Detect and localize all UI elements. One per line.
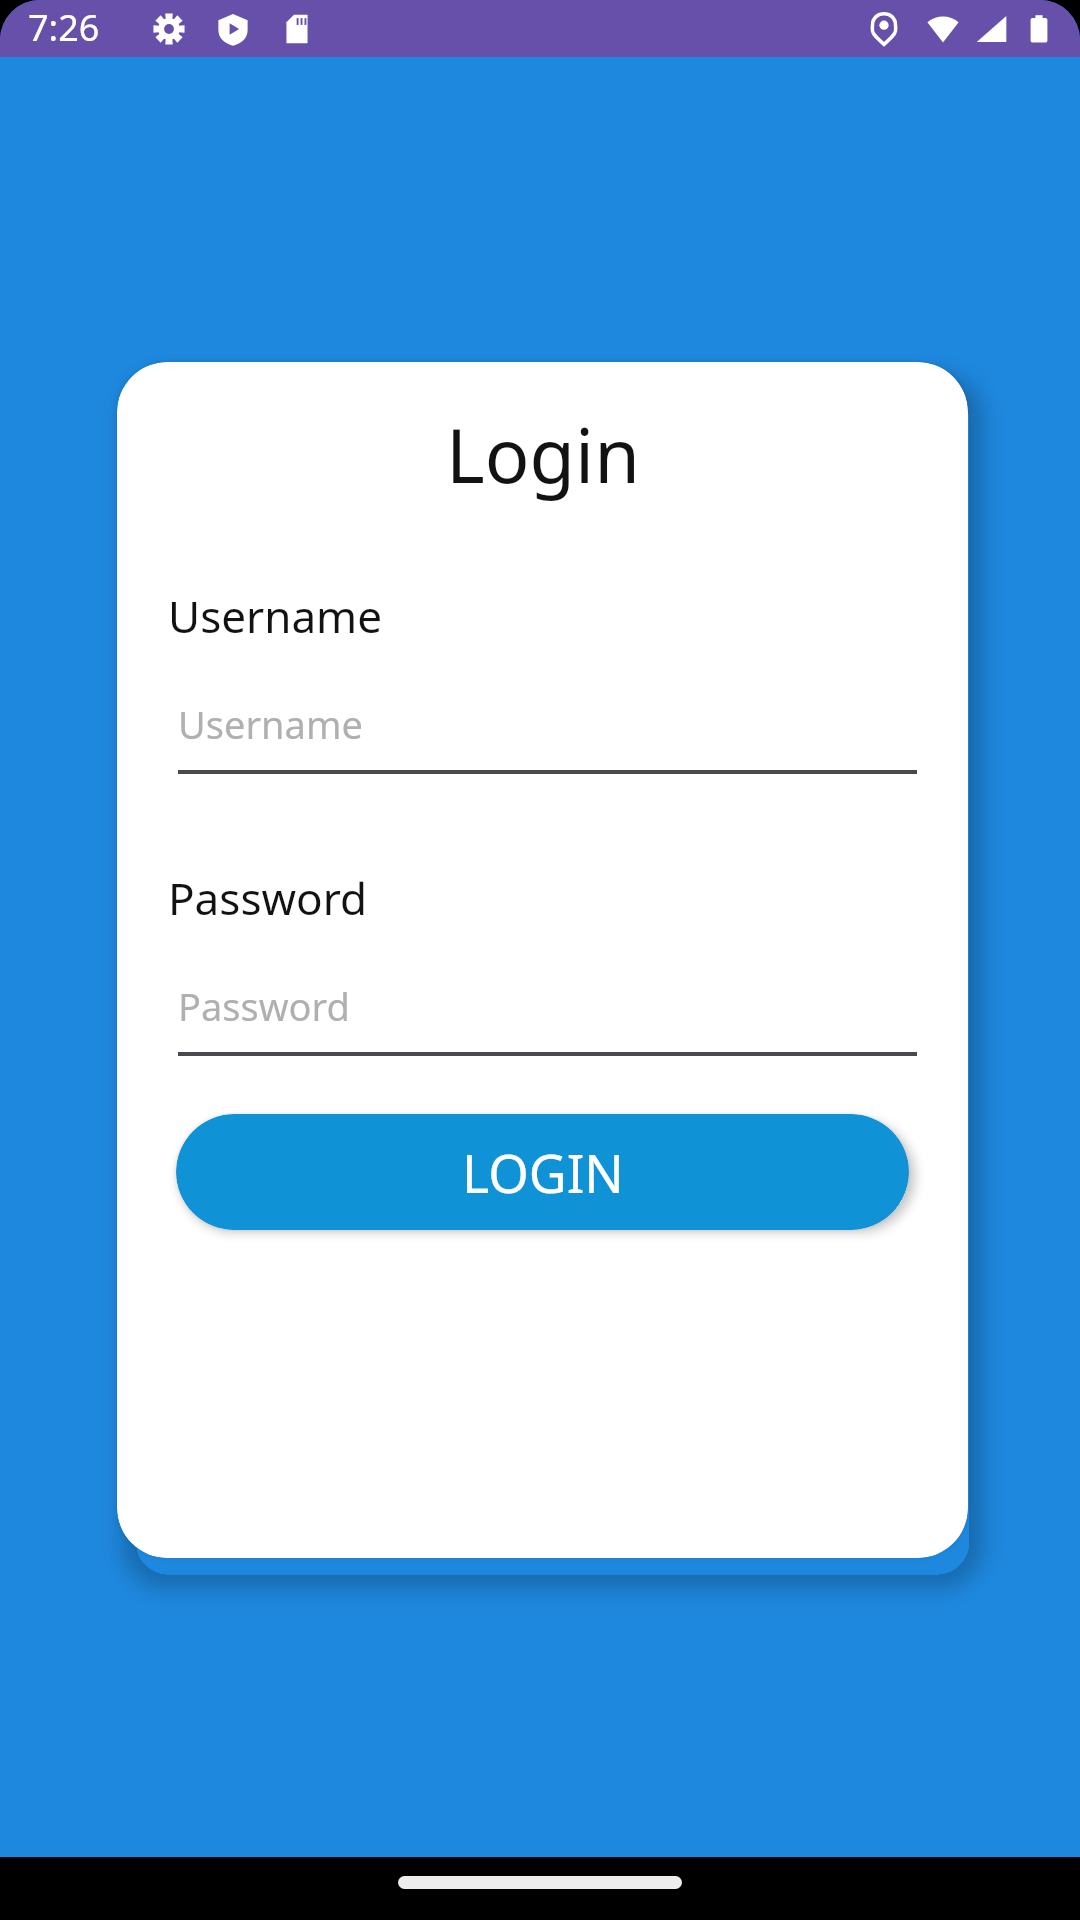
- button[interactable]: LOGIN: [176, 1114, 909, 1230]
- staticText: Password: [178, 980, 350, 1032]
- staticText: Username: [168, 586, 383, 646]
- button[interactable]: Username: [178, 698, 917, 774]
- staticText: Password: [168, 868, 368, 928]
- staticText: 7:26: [28, 3, 100, 52]
- button[interactable]: Password: [178, 980, 917, 1056]
- staticText: Login: [446, 404, 640, 505]
- staticText: Username: [178, 698, 363, 750]
- staticText: LOGIN: [462, 1137, 624, 1208]
